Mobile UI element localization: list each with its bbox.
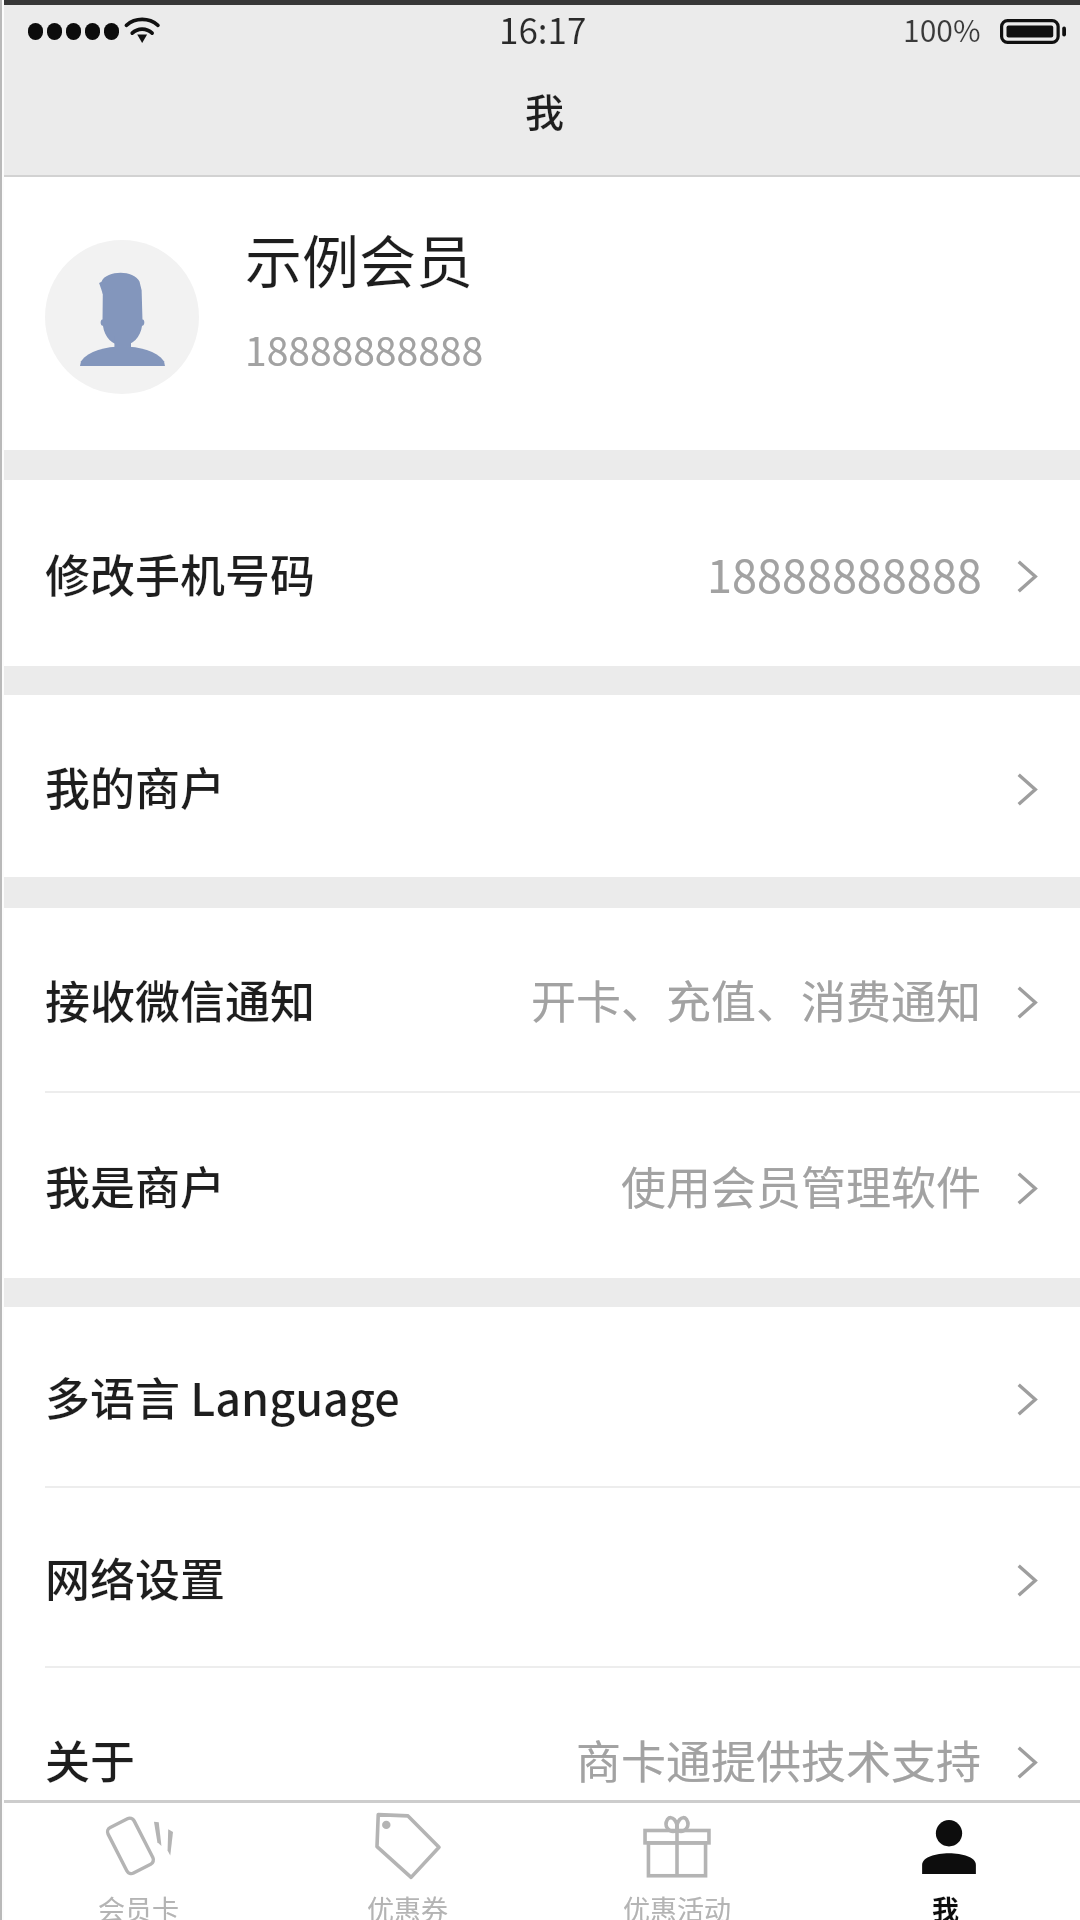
staticText: 开卡、充值、消费通知 <box>531 967 982 1032</box>
staticText: 18888888888 <box>707 541 982 606</box>
other: 会员卡 <box>105 1814 173 1878</box>
button[interactable]: 关于 <box>4 1668 1080 1851</box>
button[interactable]: 修改手机号码 <box>4 480 1080 666</box>
button[interactable]: 示例会员 <box>4 177 1080 450</box>
button[interactable]: 我的商户 <box>4 695 1080 877</box>
staticText: 18888888888 <box>245 321 484 377</box>
staticText: 关于 <box>45 1727 136 1792</box>
staticText: 16:17 <box>499 3 587 54</box>
staticText: 接收微信通知 <box>45 967 316 1032</box>
button[interactable]: 接收微信通知 <box>4 908 1080 1091</box>
staticText: 优惠活动 <box>623 1889 731 1920</box>
staticText: 我 <box>932 1889 959 1920</box>
other: 优惠活动 <box>643 1815 711 1877</box>
button[interactable]: 优惠券 <box>273 1803 542 1920</box>
staticText: 100% <box>903 7 981 50</box>
staticText: 商卡通提供技术支持 <box>576 1727 982 1792</box>
button[interactable]: 会员卡 <box>4 1803 273 1920</box>
button[interactable]: 我 <box>811 1803 1080 1920</box>
other: 我 <box>921 1819 977 1875</box>
staticText: 使用会员管理软件 <box>621 1153 982 1218</box>
staticText: 多语言 Language <box>45 1364 400 1429</box>
button[interactable]: 我是商户 <box>4 1093 1080 1278</box>
staticText: 示例会员 <box>245 217 473 300</box>
staticText: 修改手机号码 <box>45 541 316 606</box>
staticText: 网络设置 <box>45 1545 226 1610</box>
button[interactable]: 优惠活动 <box>542 1803 811 1920</box>
staticText: 我的商户 <box>45 754 226 819</box>
staticText: 优惠券 <box>367 1889 448 1920</box>
button[interactable]: 网络设置 <box>4 1488 1080 1666</box>
other: 优惠券 <box>377 1814 439 1878</box>
staticText: 我是商户 <box>45 1153 226 1218</box>
button[interactable]: 多语言 Language <box>4 1307 1080 1486</box>
staticText: 会员卡 <box>98 1889 179 1920</box>
staticText: 我 <box>525 82 565 138</box>
